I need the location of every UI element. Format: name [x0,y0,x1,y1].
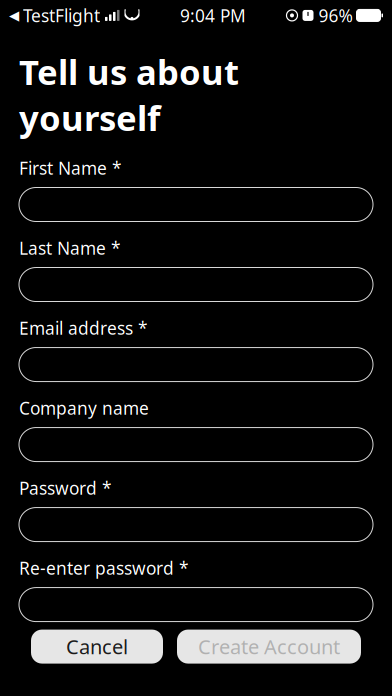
staticText: Last Name * [19,236,121,259]
staticText: First Name * [19,156,122,179]
staticText: ◀ [9,8,19,23]
button[interactable]: Create Account [177,630,361,664]
staticText: Re-enter password * [19,557,189,580]
staticText: Company name [19,396,149,419]
staticText: TestFlight [23,4,100,27]
staticText: Password * [19,477,112,500]
staticText: 96% [318,4,352,27]
staticText: Tell us about yourself [19,48,239,140]
staticText: Email address * [19,316,148,339]
staticText: 9:04 PM [180,4,246,27]
staticText: Cancel [66,633,128,660]
staticText: Create Account [198,633,340,660]
button[interactable]: Cancel [31,630,163,664]
